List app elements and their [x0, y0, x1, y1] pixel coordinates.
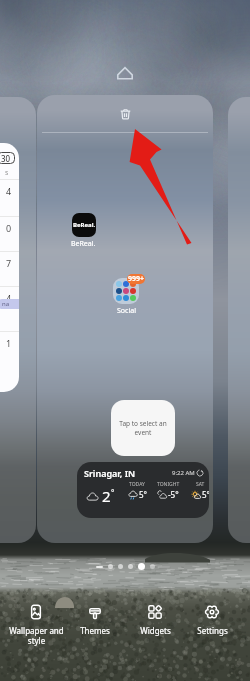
- button[interactable]: Delete: [117, 106, 134, 123]
- staticText: -5°: [168, 489, 179, 500]
- staticText: 5°: [202, 489, 209, 500]
- staticText: 999+: [128, 274, 145, 284]
- staticText: BeReal.: [71, 239, 96, 249]
- staticText: 30: [1, 153, 11, 164]
- staticText: BeReal.: [73, 221, 96, 229]
- staticText: 9:22 AM: [172, 469, 195, 477]
- staticText: °: [111, 487, 115, 498]
- staticText: TODAY: [129, 481, 145, 488]
- button[interactable]: Wallpaper and style: [5, 605, 67, 646]
- staticText: s: [5, 168, 9, 178]
- staticText: Settings: [197, 625, 228, 636]
- staticText: Themes: [80, 625, 110, 636]
- staticText: TONIGHT: [157, 481, 180, 488]
- button[interactable]: Widgets: [124, 605, 186, 636]
- staticText: 2: [102, 486, 111, 506]
- staticText: Srinagar, IN: [84, 467, 136, 479]
- staticText: Widgets: [140, 625, 171, 636]
- button[interactable]: [113, 278, 139, 304]
- button[interactable]: 30: [0, 143, 19, 392]
- staticText: na: [0, 300, 10, 308]
- staticText: SAT: [196, 481, 205, 488]
- staticText: Tap to select an event: [119, 419, 167, 437]
- button[interactable]: BeReal.: [72, 213, 96, 237]
- staticText: 7: [6, 257, 12, 269]
- staticText: Social: [117, 306, 136, 316]
- staticText: 1: [6, 337, 12, 349]
- staticText: Wallpaper and style: [9, 625, 64, 646]
- staticText: 0: [6, 222, 12, 234]
- button[interactable]: Themes: [64, 605, 126, 636]
- staticText: 4: [6, 292, 12, 304]
- button[interactable]: Tap to select an event: [111, 400, 175, 456]
- staticText: 5°: [139, 489, 147, 500]
- button[interactable]: Srinagar, IN: [77, 462, 209, 518]
- staticText: 4: [6, 185, 12, 197]
- button[interactable]: Settings: [181, 605, 243, 636]
